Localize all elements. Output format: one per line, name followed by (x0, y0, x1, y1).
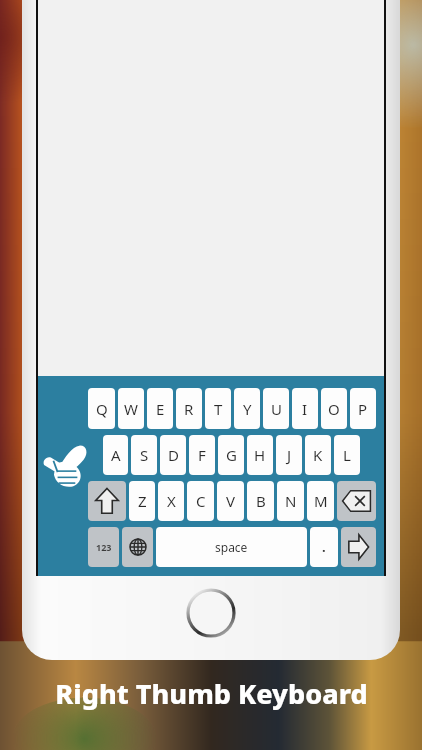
button[interactable]: Right thumb (42, 442, 94, 494)
button[interactable]: A (103, 435, 128, 475)
staticText: H (254, 445, 266, 465)
button[interactable]: V (217, 481, 244, 521)
staticText: L (343, 445, 351, 465)
staticText: F (198, 445, 206, 465)
staticText: W (124, 399, 138, 419)
staticText: C (196, 491, 206, 511)
staticText: Y (243, 399, 252, 419)
button[interactable]: space (156, 527, 307, 567)
staticText: G (226, 445, 237, 465)
button[interactable]: L (334, 435, 360, 475)
button[interactable]: Change language (122, 527, 153, 567)
button[interactable]: Period (310, 527, 338, 567)
staticText: V (226, 491, 236, 511)
staticText: M (314, 491, 328, 511)
button[interactable]: G (218, 435, 244, 475)
staticText: T (214, 399, 223, 419)
button[interactable]: T (205, 388, 231, 429)
staticText: S (140, 445, 149, 465)
button[interactable]: R (176, 388, 202, 429)
staticText: I (302, 399, 308, 419)
button[interactable]: Numbers (88, 527, 119, 567)
button[interactable]: O (321, 388, 347, 429)
button[interactable]: Return (341, 527, 376, 567)
button[interactable]: F (189, 435, 215, 475)
button[interactable]: J (276, 435, 302, 475)
button[interactable]: Y (234, 388, 260, 429)
button[interactable]: N (277, 481, 304, 521)
button[interactable]: P (350, 388, 376, 429)
other: Home (188, 590, 234, 636)
button[interactable]: I (292, 388, 318, 429)
staticText: . (322, 538, 326, 556)
button[interactable]: D (160, 435, 186, 475)
staticText: K (313, 445, 323, 465)
staticText: R (184, 399, 194, 419)
button[interactable]: X (158, 481, 184, 521)
staticText: Q (96, 399, 108, 419)
button[interactable]: B (247, 481, 274, 521)
button[interactable]: M (307, 481, 334, 521)
staticText: X (167, 491, 176, 511)
staticText: B (256, 491, 266, 511)
button[interactable]: H (247, 435, 273, 475)
staticText: space (215, 539, 248, 555)
button[interactable]: K (305, 435, 331, 475)
button[interactable]: S (131, 435, 157, 475)
staticText: E (156, 399, 165, 419)
staticText: 123 (96, 541, 112, 553)
button[interactable]: Shift (88, 481, 126, 521)
staticText: Z (138, 491, 147, 511)
button[interactable]: Q (88, 388, 115, 429)
staticText: J (287, 445, 292, 465)
button[interactable]: E (147, 388, 173, 429)
button[interactable]: W (118, 388, 144, 429)
staticText: D (168, 445, 179, 465)
staticText: N (285, 491, 297, 511)
button[interactable]: C (187, 481, 214, 521)
button[interactable]: U (263, 388, 289, 429)
staticText: U (271, 399, 282, 419)
staticText: O (328, 399, 340, 419)
staticText: A (111, 445, 121, 465)
staticText: Right Thumb Keyboard (55, 675, 368, 712)
button[interactable]: Z (129, 481, 155, 521)
button[interactable]: Backspace (337, 481, 376, 521)
staticText: P (358, 399, 368, 419)
